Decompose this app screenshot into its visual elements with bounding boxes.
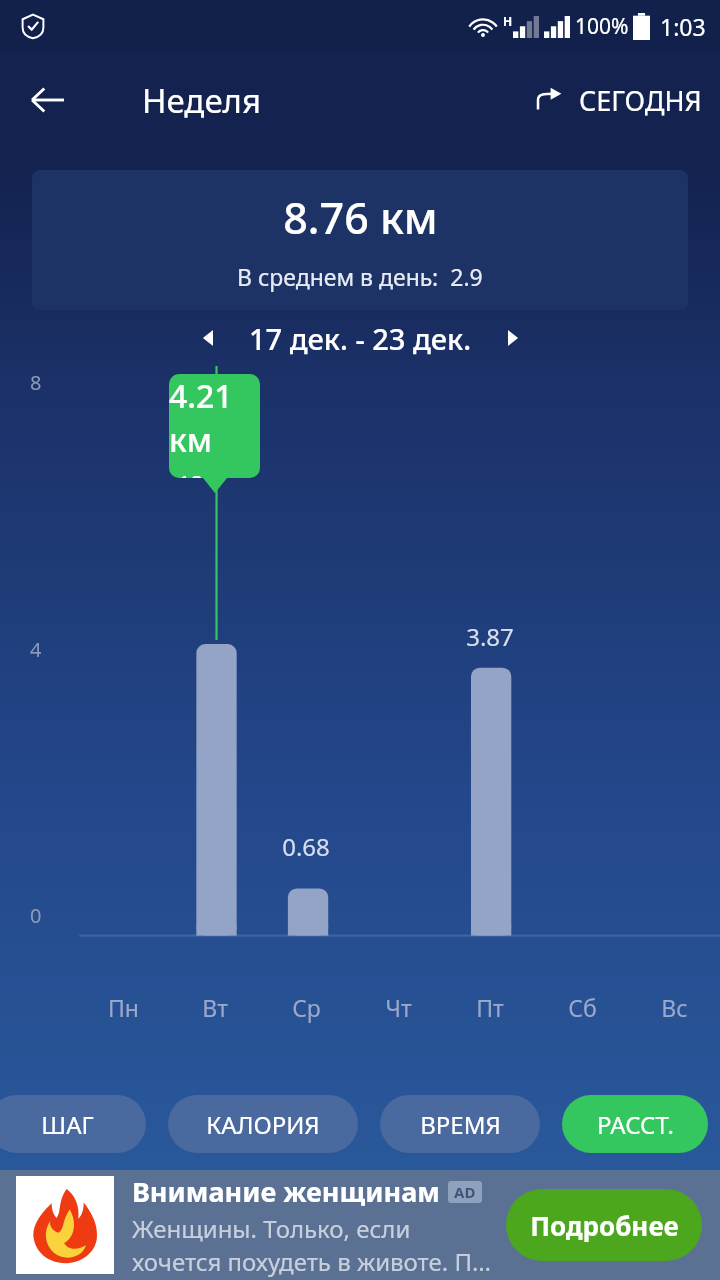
staticText: 1:03 xyxy=(660,11,706,42)
staticText: 4 xyxy=(30,636,42,663)
staticText: Пт xyxy=(476,992,504,1023)
button[interactable]: Back xyxy=(14,67,80,133)
button[interactable]: 8.76 км xyxy=(32,170,688,310)
staticText: СЕГОДНЯ xyxy=(579,82,702,119)
staticText: Пн xyxy=(108,992,139,1023)
staticText: Подробнее xyxy=(530,1208,679,1243)
button[interactable]: СЕГОДНЯ xyxy=(531,74,706,127)
staticText: хочется похудеть в животе. П… xyxy=(132,1245,491,1278)
staticText: 8.76 км xyxy=(283,188,438,247)
button[interactable]: Previous week xyxy=(183,312,235,364)
staticText: AD xyxy=(454,1182,476,1202)
button[interactable]: 4.21 км xyxy=(169,374,260,478)
button[interactable]: Next week xyxy=(486,312,538,364)
button[interactable]: Подробнее xyxy=(506,1189,702,1261)
staticText: ВРЕМЯ xyxy=(420,1108,501,1141)
button[interactable]: РАССТ. xyxy=(562,1095,708,1153)
staticText: 8 xyxy=(30,369,42,396)
staticText: ШАГ xyxy=(41,1108,94,1141)
staticText: H xyxy=(503,13,513,29)
staticText: КАЛОРИЯ xyxy=(206,1108,320,1141)
staticText: РАССТ. xyxy=(597,1108,674,1141)
staticText: 0 xyxy=(30,902,42,929)
staticText: Чт xyxy=(385,992,412,1023)
staticText: Внимание женщинам xyxy=(132,1173,440,1210)
staticText: Вс xyxy=(661,992,688,1023)
staticText: 4.21 км xyxy=(169,374,260,462)
button[interactable]: Внимание женщинам xyxy=(0,1170,720,1280)
staticText: В среднем в день: 2.9 xyxy=(237,261,483,292)
staticText: 0.68 xyxy=(282,830,330,863)
staticText: 3.87 xyxy=(466,620,514,653)
staticText: 100% xyxy=(575,12,629,41)
staticText: Вт xyxy=(202,992,228,1023)
staticText: Женщины. Только, если xyxy=(132,1212,411,1245)
button[interactable]: 17 дек. - 23 дек. xyxy=(249,319,472,358)
button[interactable]: ШАГ xyxy=(0,1095,146,1153)
staticText: Неделя xyxy=(142,78,261,123)
staticText: Сб xyxy=(568,992,597,1023)
staticText: Ср xyxy=(292,992,321,1023)
button[interactable]: ВРЕМЯ xyxy=(380,1095,540,1153)
button[interactable]: КАЛОРИЯ xyxy=(168,1095,358,1153)
staticText: 18 дек. xyxy=(178,468,252,478)
